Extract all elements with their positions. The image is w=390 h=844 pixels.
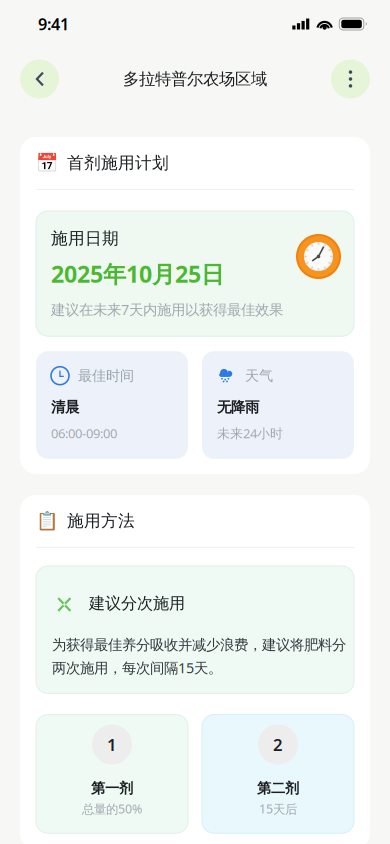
staticText: 9:41 (38, 13, 69, 35)
staticText: 总量的50% (82, 800, 142, 817)
staticText: 1 (107, 733, 117, 756)
staticText: 第一剂 (91, 779, 133, 797)
staticText: 多拉特普尔农场区域 (123, 69, 267, 89)
staticText: 15天后 (259, 800, 297, 817)
staticText: 未来24小时 (217, 424, 283, 442)
staticText: 第二剂 (257, 779, 299, 797)
staticText: 建议分次施用 (89, 593, 185, 614)
staticText: 施用日期 (51, 228, 119, 249)
button[interactable]: Back (20, 59, 59, 98)
staticText: 无降雨 (217, 398, 259, 416)
staticText: 2025年10月25日 (51, 258, 224, 290)
staticText: 📅 (36, 152, 58, 174)
staticText: 首剂施用计划 (67, 152, 169, 173)
staticText: 📋 (36, 510, 58, 531)
staticText: 06:00-09:00 (51, 424, 117, 442)
staticText: 为获得最佳养分吸收并减少浪费，建议将肥料分两次施用，每次间隔15天。 (52, 636, 346, 678)
staticText: 建议在未来7天内施用以获得最佳效果 (51, 300, 283, 319)
staticText: 施用方法 (67, 510, 135, 531)
staticText: 2 (273, 733, 283, 756)
staticText: 天气 (245, 367, 273, 385)
button[interactable]: More options (331, 59, 370, 98)
staticText: 清晨 (51, 398, 79, 416)
staticText: 最佳时间 (78, 367, 134, 385)
